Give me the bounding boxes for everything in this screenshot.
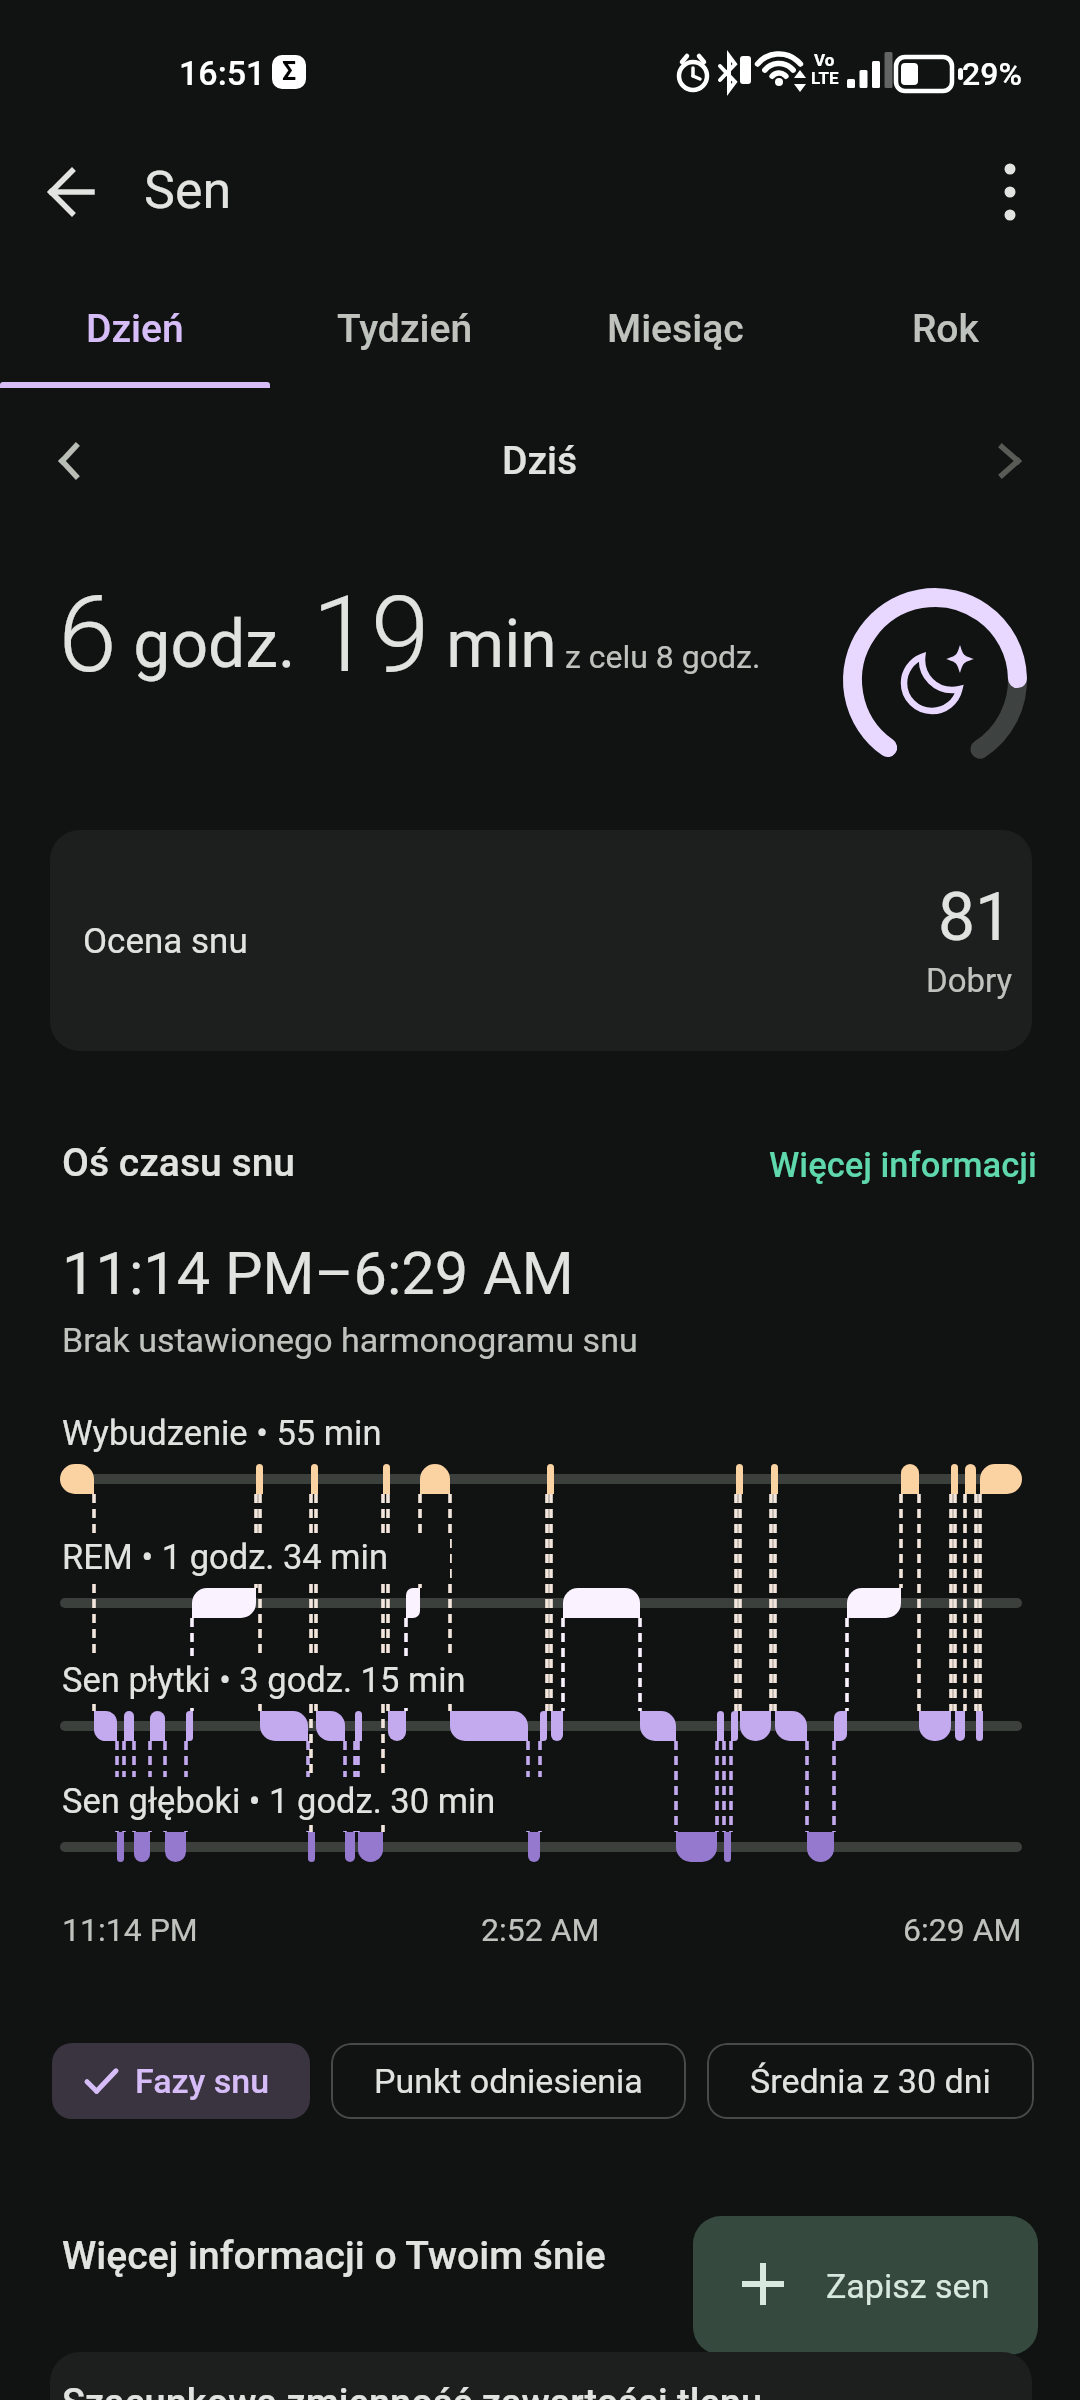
staticText: Wybudzenie • 55 min: [62, 1413, 382, 1453]
staticText: Sen płytki • 3 godz. 15 min: [62, 1660, 466, 1700]
staticText: 11:14 PM: [62, 1911, 198, 1949]
staticText: z celu 8 godz.: [557, 638, 761, 676]
button[interactable]: Więcej informacji: [763, 1139, 1043, 1191]
staticText: Szacunkowa zmienność zawartości tlenu: [62, 2381, 763, 2400]
staticText: Ocena snu: [83, 921, 248, 962]
staticText: Więcej informacji o Twoim śnie: [62, 2233, 606, 2279]
button[interactable]: Więcej opcji: [968, 150, 1052, 234]
staticText: godz.: [117, 606, 312, 683]
staticText: Tydzień: [337, 306, 473, 352]
staticText: Dobry: [926, 961, 1013, 1000]
button[interactable]: Dzień: [0, 274, 270, 388]
button[interactable]: Następny dzień: [978, 428, 1044, 494]
staticText: Sen głęboki • 1 godz. 30 min: [62, 1781, 496, 1821]
button[interactable]: Rok: [810, 274, 1080, 388]
staticText: Rok: [912, 306, 979, 352]
staticText: Zapisz sen: [826, 2266, 990, 2306]
staticText: Sen: [144, 160, 232, 221]
staticText: REM • 1 godz. 34 min: [62, 1537, 388, 1577]
staticText: 2:52 AM: [481, 1911, 600, 1949]
staticText: Miesiąc: [607, 306, 744, 352]
staticText: 81: [938, 879, 1013, 956]
staticText: Vo: [814, 50, 835, 70]
staticText: Więcej informacji: [769, 1145, 1037, 1185]
staticText: 29%: [962, 55, 1022, 93]
staticText: Fazy snu: [135, 2061, 270, 2101]
staticText: 6:29 AM: [903, 1911, 1022, 1949]
button[interactable]: Wstecz: [30, 150, 114, 234]
staticText: Punkt odniesienia: [374, 2061, 643, 2101]
button[interactable]: Tydzień: [270, 274, 540, 388]
button[interactable]: Średnia z 30 dni: [707, 2043, 1034, 2119]
button[interactable]: Punkt odniesienia: [331, 2043, 686, 2119]
button[interactable]: Poprzedni dzień: [36, 428, 102, 494]
staticText: 19: [312, 573, 430, 697]
staticText: Oś czasu snu: [62, 1140, 296, 1186]
staticText: LTE: [811, 68, 839, 88]
button[interactable]: Zapisz sen: [693, 2216, 1038, 2355]
staticText: 16:51: [179, 53, 266, 93]
staticText: 11:14 PM–6:29 AM: [62, 1239, 574, 1309]
button[interactable]: Fazy snu: [52, 2043, 310, 2119]
staticText: min: [430, 606, 557, 683]
staticText: 6: [58, 573, 117, 697]
button[interactable]: Miesiąc: [540, 274, 810, 388]
staticText: Średnia z 30 dni: [750, 2061, 991, 2101]
staticText: Brak ustawionego harmonogramu snu: [62, 1320, 638, 1360]
button[interactable]: Ocena snu: [50, 830, 1032, 1051]
staticText: Dziś: [502, 438, 578, 484]
staticText: Σ: [282, 57, 297, 86]
staticText: Dzień: [86, 306, 184, 352]
button[interactable]: Szacunkowa zmienność zawartości tlenu: [50, 2352, 1032, 2400]
